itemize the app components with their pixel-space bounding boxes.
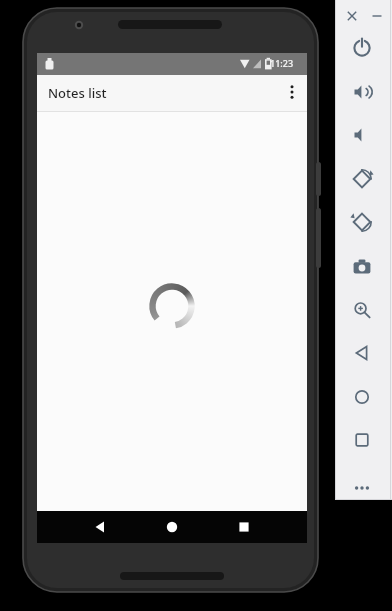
button[interactable]: More [350,476,374,500]
button[interactable]: Recents [222,511,266,543]
button[interactable]: Back [78,511,122,543]
button[interactable]: Close [343,7,361,25]
button[interactable]: More options [281,78,303,106]
button[interactable]: Power [350,36,374,60]
button[interactable]: Screenshot [350,255,374,279]
button[interactable]: Overview [350,428,374,452]
button[interactable]: Minimize [368,7,386,25]
button[interactable]: Rotate right [350,210,374,234]
button[interactable]: Back [350,341,374,365]
button[interactable]: Volume down [350,123,374,147]
button[interactable]: Volume up [350,80,374,104]
button[interactable]: Home [350,385,374,409]
staticText: Notes list [48,84,107,102]
button[interactable]: Home [150,511,194,543]
staticText: 11:23 [270,57,294,69]
button[interactable]: Rotate left [350,167,374,191]
button[interactable]: Zoom [350,298,374,322]
